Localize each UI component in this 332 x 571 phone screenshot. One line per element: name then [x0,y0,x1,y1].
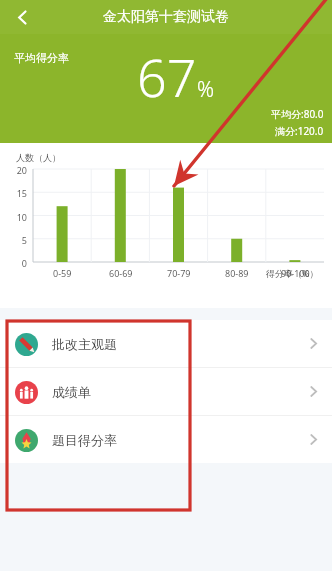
button[interactable]: 题目得分率 [0,416,332,463]
staticText: 满分:120.0 [275,124,324,138]
staticText: 成绩单 [52,384,91,400]
staticText: 20 [1,164,27,176]
staticText: 金太阳第十套测试卷 [103,8,229,26]
staticText: 0 [1,257,27,269]
button[interactable]: Back [0,0,44,34]
staticText: 67 [137,41,197,112]
staticText: 平均分:80.0 [271,107,324,121]
staticText: 5 [1,234,27,246]
staticText: 15 [1,187,27,199]
staticText: % [197,75,215,104]
staticText: 0-59 [53,267,72,279]
staticText: 80-89 [225,267,249,279]
staticText: 得分率（%） [266,267,319,279]
staticText: 人数（人） [16,152,61,163]
staticText: 70-79 [167,267,191,279]
staticText: 90-100 [281,267,310,279]
button[interactable]: 成绩单 [0,368,332,415]
staticText: 题目得分率 [52,432,117,448]
staticText: 平均得分率 [14,51,69,65]
staticText: 批改主观题 [52,336,117,352]
button[interactable]: 批改主观题 [0,320,332,367]
staticText: 10 [1,211,27,223]
staticText: 60-69 [109,267,133,279]
